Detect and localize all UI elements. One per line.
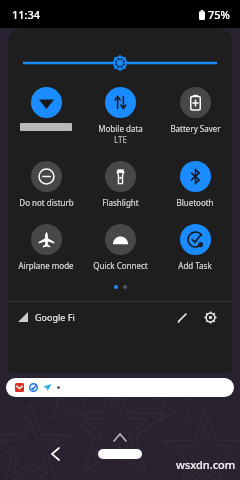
button[interactable]: Bluetooth	[158, 161, 232, 208]
other: Expand	[114, 434, 126, 441]
button[interactable]: Home	[98, 449, 142, 459]
button[interactable]: Do not disturb	[9, 161, 83, 208]
button[interactable]: Flashlight	[83, 161, 157, 208]
button[interactable]: Mobile data	[83, 87, 157, 145]
button[interactable]: Add Task	[158, 224, 232, 271]
button[interactable]: Edit	[170, 305, 194, 329]
staticText: 75%	[208, 7, 230, 22]
staticText: Bluetooth	[176, 197, 214, 208]
staticText: Flashlight	[102, 197, 139, 208]
staticText: 11:34	[12, 7, 41, 22]
button[interactable]	[6, 378, 234, 397]
button[interactable]: Battery Saver	[158, 87, 232, 134]
staticText: Airplane mode	[18, 260, 74, 271]
button[interactable]: Wi-Fi	[9, 87, 83, 131]
staticText: Battery Saver	[170, 123, 221, 134]
button[interactable]: Google Fi	[35, 311, 75, 323]
staticText: Do not disturb	[19, 197, 74, 208]
staticText: Add Task	[178, 260, 212, 271]
staticText: wsxdn.com	[176, 457, 236, 472]
staticText: LTE	[114, 134, 127, 145]
staticText: Mobile data	[98, 123, 143, 134]
button[interactable]: Airplane mode	[9, 224, 83, 271]
button[interactable]: Settings	[198, 305, 222, 329]
staticText: Quick Connect	[93, 260, 148, 271]
button[interactable]: Quick Connect	[83, 224, 157, 271]
button[interactable]: Back	[44, 443, 66, 465]
